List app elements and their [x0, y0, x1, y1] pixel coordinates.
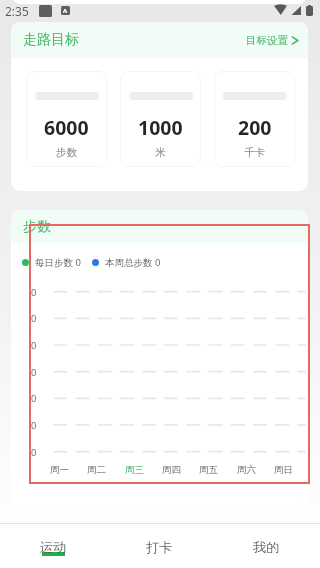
staticText: 6000	[44, 114, 89, 141]
button[interactable]: 1000	[120, 71, 201, 167]
staticText: 1000	[138, 114, 183, 141]
staticText: A	[63, 7, 68, 15]
button[interactable]: 打卡	[106, 524, 213, 568]
staticText: 0	[31, 419, 37, 432]
staticText: 200	[238, 114, 272, 141]
staticText: 0	[31, 446, 37, 459]
staticText: 步数	[56, 146, 78, 159]
button[interactable]: 200	[214, 71, 295, 167]
staticText: 每日步数 0	[35, 256, 81, 269]
staticText: 打卡	[146, 539, 173, 556]
button[interactable]: 运动	[0, 524, 106, 568]
staticText: 周一	[50, 464, 69, 476]
staticText: 周四	[162, 464, 181, 476]
staticText: 千卡	[244, 146, 266, 159]
staticText: 0	[31, 366, 37, 379]
staticText: 米	[155, 146, 166, 159]
button[interactable]: 6000	[26, 71, 107, 167]
staticText: 目标设置	[246, 34, 288, 47]
staticText: 走路目标	[23, 31, 79, 49]
button[interactable]: 走路目标	[11, 22, 308, 58]
button[interactable]: 我的	[213, 524, 320, 568]
staticText: 我的	[253, 539, 280, 556]
staticText: 周六	[237, 464, 256, 476]
staticText: 0	[31, 312, 37, 325]
staticText: 周三	[125, 464, 144, 476]
staticText: 周日	[274, 464, 293, 476]
staticText: 本周总步数 0	[105, 256, 161, 269]
staticText: 周二	[87, 464, 106, 476]
staticText: 0	[31, 392, 37, 405]
staticText: 步数	[23, 218, 51, 236]
staticText: 周五	[199, 464, 218, 476]
staticText: 2:35	[5, 3, 29, 19]
staticText: 0	[31, 339, 37, 352]
staticText: 运动	[40, 539, 67, 556]
staticText: 0	[31, 286, 37, 299]
